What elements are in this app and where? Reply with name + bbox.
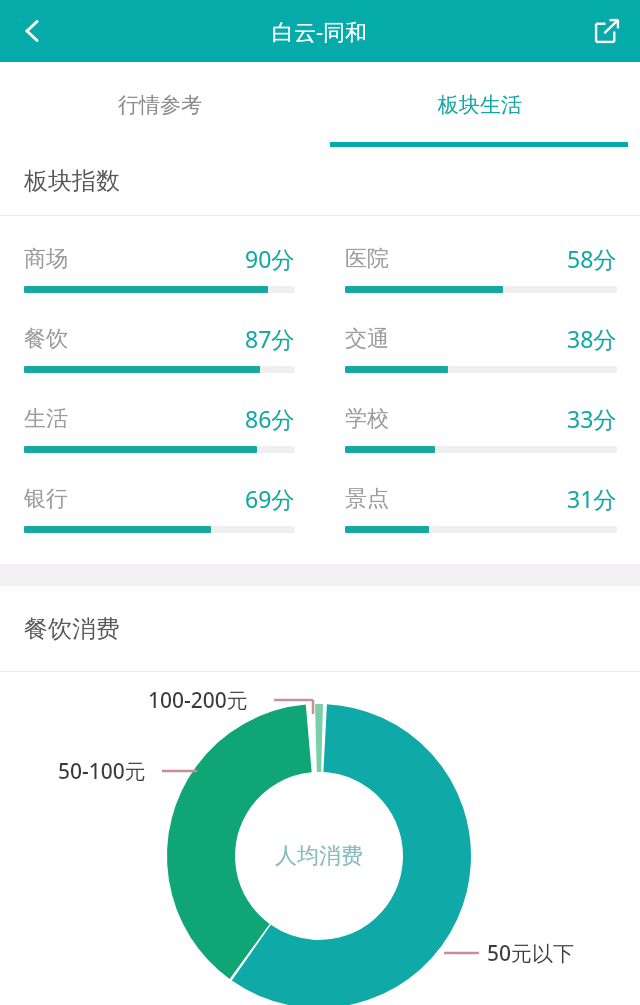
button[interactable]: 医院 xyxy=(345,228,617,308)
staticText: 板块指数 xyxy=(24,166,120,196)
staticText: 50元以下 xyxy=(487,939,575,968)
staticText: 86分 xyxy=(245,403,295,434)
staticText: 90分 xyxy=(245,243,295,274)
staticText: 58分 xyxy=(567,243,617,274)
staticText: 餐饮 xyxy=(24,325,68,353)
button[interactable]: 银行 xyxy=(24,468,295,548)
button[interactable]: 商场 xyxy=(24,228,295,308)
button[interactable]: 行情参考 xyxy=(0,62,320,147)
button[interactable]: 学校 xyxy=(345,388,617,468)
button[interactable]: 餐饮 xyxy=(24,308,295,388)
button[interactable]: 生活 xyxy=(24,388,295,468)
staticText: 31分 xyxy=(567,483,617,514)
button[interactable]: 景点 xyxy=(345,468,617,548)
staticText: 行情参考 xyxy=(118,92,202,118)
staticText: 学校 xyxy=(345,405,389,433)
button[interactable]: Share xyxy=(582,6,632,56)
staticText: 69分 xyxy=(245,483,295,514)
button[interactable]: 交通 xyxy=(345,308,617,388)
staticText: 板块生活 xyxy=(438,92,522,118)
staticText: 餐饮消费 xyxy=(24,614,120,644)
staticText: 100-200元 xyxy=(148,686,248,715)
button[interactable]: Back xyxy=(6,5,58,57)
staticText: 白云-同和 xyxy=(272,16,368,46)
staticText: 87分 xyxy=(245,323,295,354)
staticText: 银行 xyxy=(24,485,68,513)
staticText: 医院 xyxy=(345,245,389,273)
staticText: 生活 xyxy=(24,405,68,433)
staticText: 商场 xyxy=(24,245,68,273)
staticText: 50-100元 xyxy=(58,757,146,786)
staticText: 人均消费 xyxy=(275,842,363,870)
staticText: 38分 xyxy=(567,323,617,354)
staticText: 交通 xyxy=(345,325,389,353)
staticText: 33分 xyxy=(567,403,617,434)
staticText: 景点 xyxy=(345,485,389,513)
button[interactable]: 板块生活 xyxy=(320,62,640,147)
